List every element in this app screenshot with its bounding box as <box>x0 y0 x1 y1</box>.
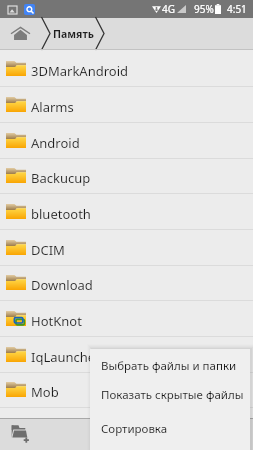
button[interactable]: 3DMarkAndroid <box>0 51 253 86</box>
staticText: 3DMarkAndroid <box>31 62 128 80</box>
button[interactable]: DCIM <box>0 230 253 265</box>
button[interactable]: IqLauncher <box>0 337 253 372</box>
staticText: HotKnot <box>31 312 82 330</box>
staticText: Сортировка <box>101 421 168 437</box>
button[interactable]: Сортировка <box>90 414 250 444</box>
staticText: Android <box>31 134 80 152</box>
button[interactable]: Backucup <box>0 158 253 193</box>
button[interactable]: New folder <box>0 419 40 450</box>
staticText: Mob <box>31 383 59 401</box>
button[interactable]: bluetooth <box>0 194 253 229</box>
staticText: Download <box>31 276 93 294</box>
button[interactable]: Home <box>0 18 41 49</box>
staticText: bluetooth <box>31 205 91 223</box>
staticText: DCIM <box>31 241 65 259</box>
staticText: IqLauncher <box>31 348 101 366</box>
staticText: 4G <box>162 2 175 16</box>
staticText: Выбрать файлы и папки <box>101 358 237 374</box>
staticText: Backucup <box>31 169 91 187</box>
button[interactable]: Память <box>53 18 103 49</box>
button[interactable]: Показать скрытые файлы <box>90 380 250 410</box>
staticText: 4:51 <box>227 2 247 16</box>
staticText: 95% <box>194 2 214 16</box>
button[interactable]: Download <box>0 265 253 300</box>
button[interactable]: HotKnot <box>0 301 253 336</box>
staticText: Alarms <box>31 98 74 116</box>
staticText: Память <box>53 27 94 41</box>
button[interactable]: Выбрать файлы и папки <box>90 351 250 381</box>
button[interactable]: Android <box>0 123 253 158</box>
button[interactable]: Mob <box>0 372 253 407</box>
staticText: Показать скрытые файлы <box>101 387 244 403</box>
button[interactable]: Alarms <box>0 87 253 122</box>
